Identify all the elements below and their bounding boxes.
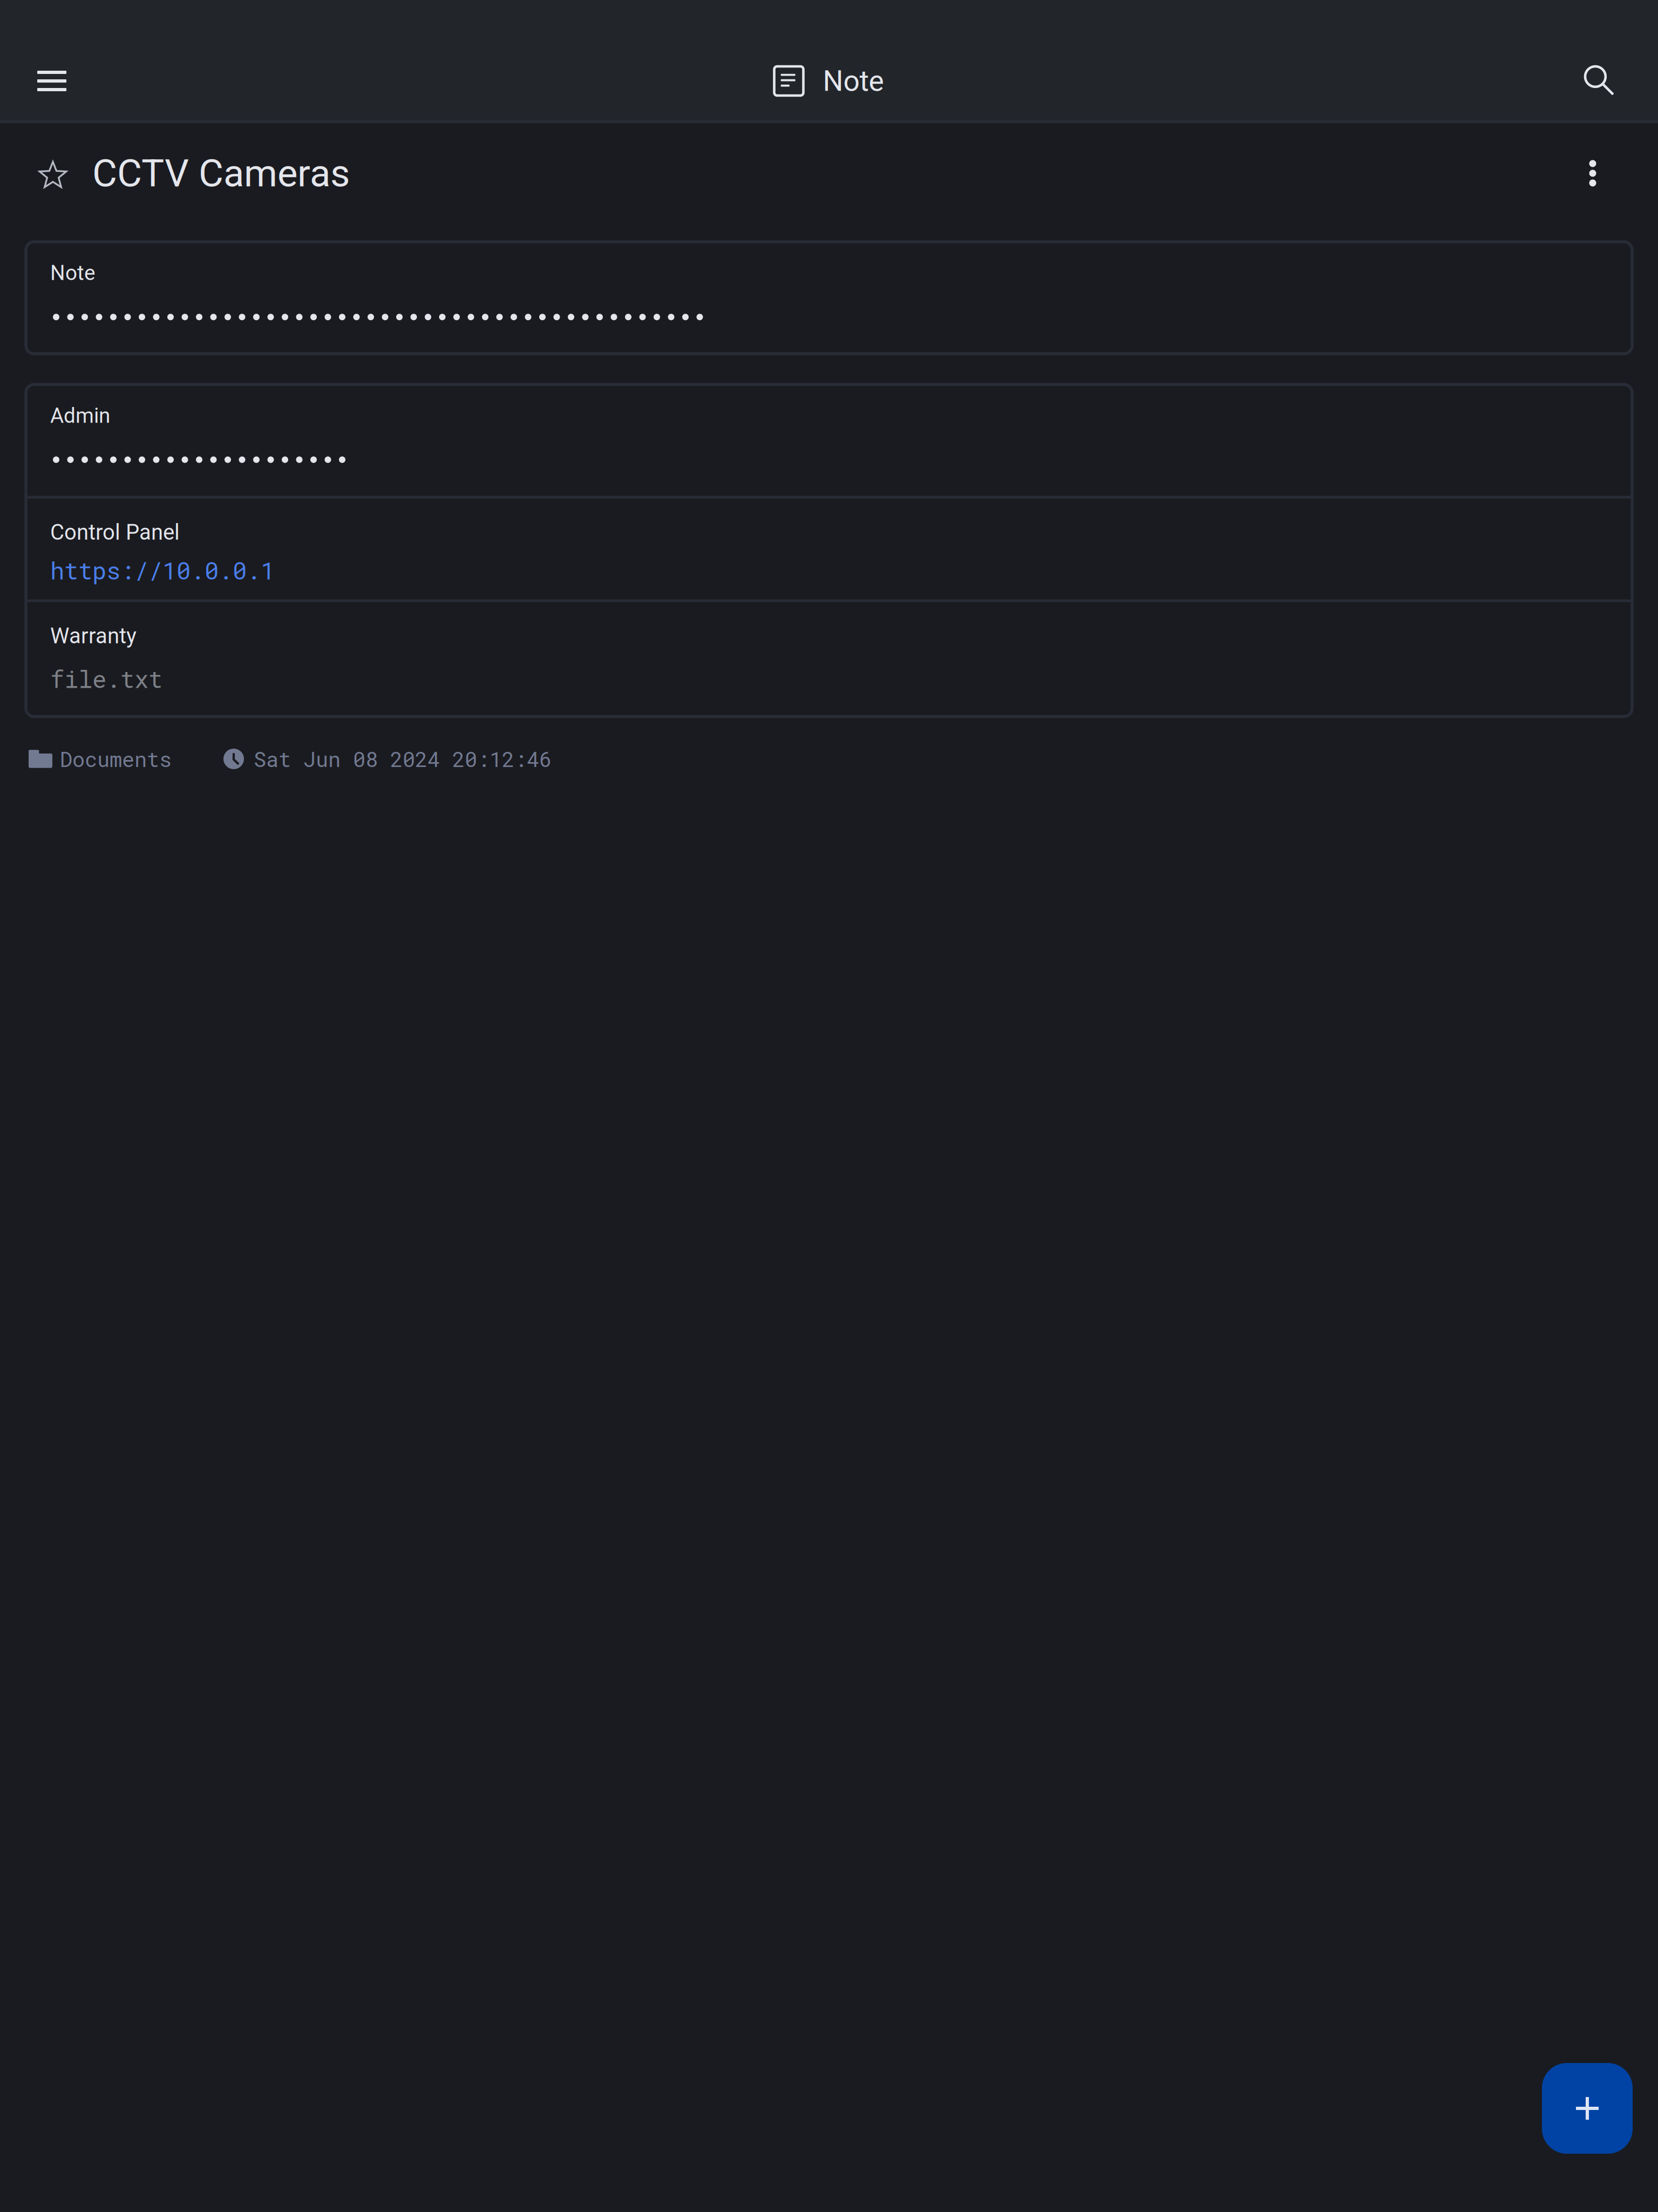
button[interactable]: Search [1565, 46, 1635, 116]
staticText: Documents [60, 745, 172, 773]
staticText: Admin [50, 403, 110, 428]
staticText: Note [823, 64, 884, 98]
staticText: https://10.0.0.1 [50, 555, 275, 586]
staticText: Sat Jun 08 2024 20:12:46 [254, 745, 552, 773]
button[interactable]: Favourite [24, 145, 81, 202]
button[interactable]: Menu [17, 46, 87, 116]
staticText: CCTV Cameras [92, 151, 350, 196]
staticText: Note [50, 261, 96, 285]
button[interactable]: More options [1564, 145, 1621, 202]
staticText: Warranty [50, 623, 137, 648]
button[interactable]: Add item [1542, 2063, 1633, 2154]
staticText: Control Panel [50, 520, 180, 545]
staticText: file.txt [50, 663, 162, 694]
